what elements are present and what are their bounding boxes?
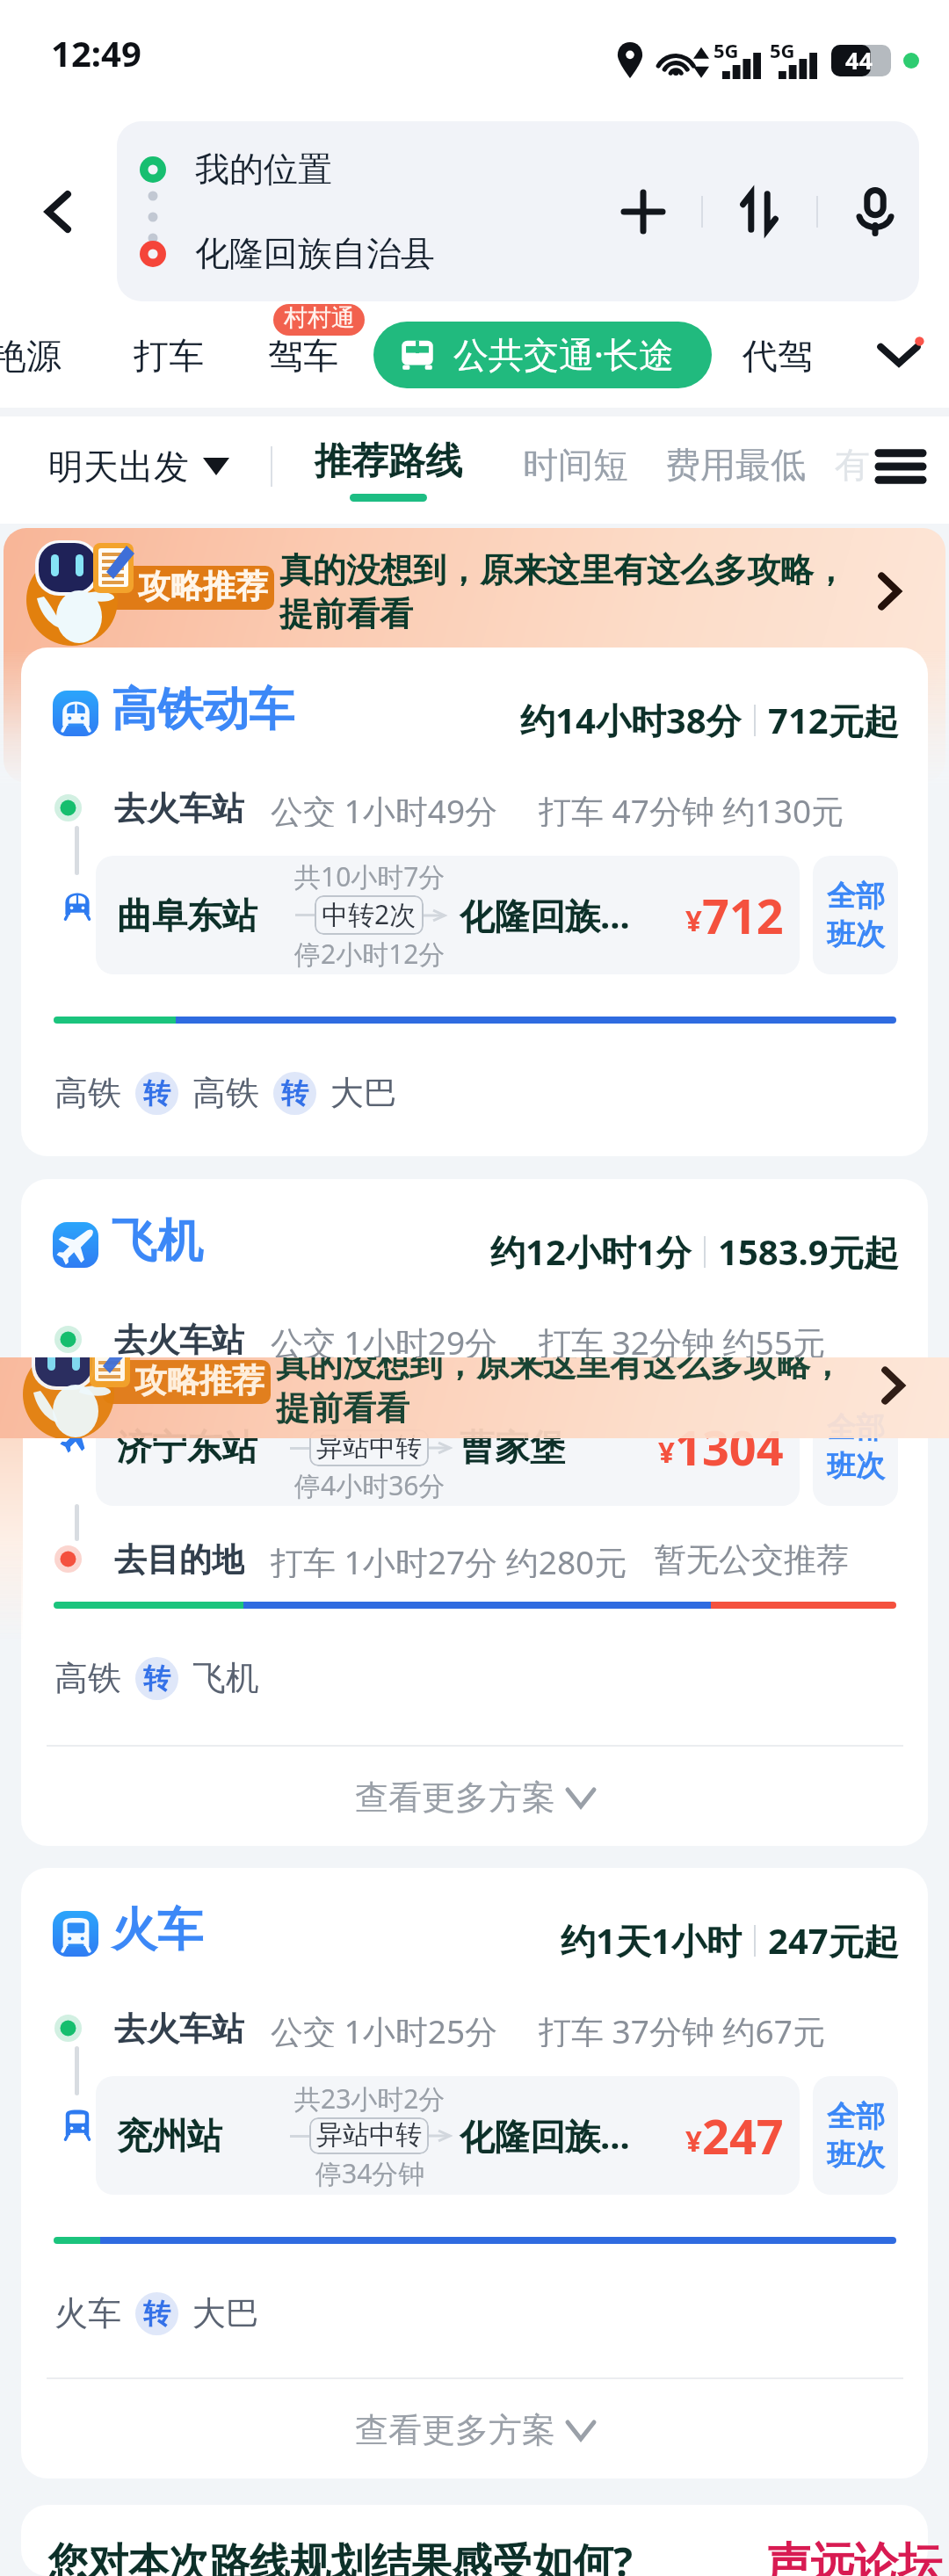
staticText: 您对本次路线规划结果感受如何? [47,2534,633,2576]
staticText: 约1天1小时 [561,1916,742,1965]
staticText: 曲阜东站 [117,894,257,937]
staticText: 转 [281,1076,308,1111]
button[interactable]: 高铁动车 [21,648,928,1156]
staticText: 公交 1小时29分 [271,1320,498,1358]
button[interactable]: 公共交通·长途 [373,322,712,388]
button[interactable]: 时间短 [523,443,628,487]
button[interactable]: 查看更多方案 [21,1749,928,1846]
staticText: 推荐路线 [315,438,462,485]
staticText: 全部 [827,1409,885,1446]
staticText: 247 [702,2103,784,2168]
staticText: 提前看看 [279,593,413,635]
staticText: 打车 47分钟 约130元 [539,788,844,827]
staticText: 5G [770,37,795,63]
button[interactable]: Back [0,121,117,301]
staticText: 艳源 [0,334,62,378]
staticText: ¥ [685,2121,702,2160]
staticText: 共23小时2分 [294,2080,446,2117]
staticText: 飞机 [192,1657,259,1699]
staticText: 我的位置 [195,148,332,191]
button[interactable]: 代驾 [734,334,822,378]
button[interactable]: Add waypoint [604,172,683,251]
staticText: 共10小时7分 [294,858,446,894]
staticText: 有 [835,443,870,487]
staticText: 公交 1小时49分 [271,788,498,827]
staticText: ¥ [685,901,702,940]
staticText: 712 [702,883,784,948]
staticText: 火车 [54,2292,121,2334]
staticText: 中转2次 [322,896,417,932]
staticText: 真的没想到，原来这里有这么多攻略， [276,1357,844,1386]
staticText: 班次 [827,2137,885,2174]
staticText: 提前看看 [276,1387,409,1424]
staticText: 打车 1小时27分 约280元 [271,1539,627,1578]
staticText: 约12小时1分 [490,1227,692,1276]
staticText: 异站中转 [316,2118,422,2152]
staticText: 712元起 [768,696,899,744]
button[interactable]: 攻略推荐 [4,528,945,783]
staticText: ¥ [658,1432,675,1472]
staticText: 停34分钟 [315,2155,425,2191]
button[interactable]: 打车 [125,334,213,378]
staticText: 化隆回族... [460,891,630,939]
staticText: 济宁东站 [117,1425,257,1469]
button[interactable]: Voice search [836,172,915,251]
staticText: 打车 [134,334,204,378]
staticText: 明天出发 [48,445,189,488]
staticText: 大巴 [192,2292,259,2334]
staticText: 费用最低 [665,443,806,487]
staticText: 火车 [112,1901,203,1959]
button[interactable]: 火车 [21,1868,928,2478]
staticText: 化隆回族自治县 [195,232,435,275]
staticText: 查看更多方案 [355,2409,555,2451]
staticText: 攻略推荐 [134,1360,264,1401]
staticText: 兖州站 [117,2114,222,2158]
staticText: 高铁 [54,1072,121,1114]
button[interactable]: 全部 [813,2076,898,2195]
staticText: 停4小时36分 [294,1467,446,1503]
staticText: 高铁动车 [112,681,294,739]
staticText: 停2小时12分 [294,936,446,972]
button[interactable]: 明天出发 [48,445,229,488]
button[interactable]: 艳源 [0,334,70,378]
staticText: 5G [714,37,739,63]
button[interactable]: 攻略推荐 [0,1357,949,1438]
button[interactable]: 驾车 [259,334,347,378]
staticText: 高铁 [192,1072,259,1114]
button[interactable]: Swap origin and destination [720,172,799,251]
button[interactable]: 我的位置 [117,121,919,301]
staticText: 1304 [675,1415,784,1480]
button[interactable]: 费用最低 [665,443,806,487]
staticText: 攻略推荐 [138,566,268,607]
button[interactable]: 推荐路线 [315,438,462,502]
staticText: 公交 1小时25分 [271,2008,498,2047]
button[interactable]: 全部 [813,1387,898,1506]
staticText: 班次 [827,1448,885,1485]
staticText: 大巴 [330,1072,397,1114]
button[interactable]: 全部 [813,856,898,974]
button[interactable]: 查看更多方案 [21,2382,928,2478]
staticText: 曹家堡 [460,1425,565,1469]
staticText: 化隆回族... [460,2111,630,2160]
staticText: 全部 [827,2098,885,2135]
staticText: 真的没想到，原来这里有这么多攻略， [279,549,847,591]
staticText: 时间短 [523,443,628,487]
staticText: 247元起 [768,1916,899,1965]
staticText: 打车 37分钟 约67元 [539,2008,825,2047]
staticText: 转 [143,1661,170,1696]
staticText: 声远论坛 [766,2536,942,2576]
button[interactable]: Sort and filter [866,431,936,502]
staticText: 1583.9元起 [718,1227,899,1276]
staticText: 去目的地 [114,1539,244,1578]
staticText: 约14小时38分 [520,696,742,744]
staticText: 查看更多方案 [355,1776,555,1819]
staticText: 转 [143,1076,170,1111]
staticText: 班次 [827,916,885,953]
staticText: 公共交通·长途 [453,329,674,378]
button[interactable]: 飞机 [21,1179,928,1846]
staticText: 代驾 [743,334,813,378]
staticText: 去火车站 [114,1320,244,1358]
button[interactable]: More transport modes [866,321,932,387]
staticText: 去火车站 [114,788,244,827]
staticText: 12:49 [51,29,141,76]
